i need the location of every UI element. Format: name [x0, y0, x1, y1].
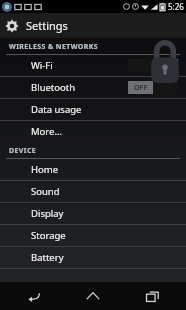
other: Screen lock — [150, 40, 180, 84]
button[interactable]: Sound — [0, 181, 186, 202]
button[interactable]: Display — [0, 203, 186, 224]
button[interactable]: Home — [0, 159, 186, 180]
staticText: Home — [31, 163, 59, 176]
staticText: Sound — [31, 185, 60, 198]
staticText: Storage — [31, 229, 66, 242]
staticText: Battery — [31, 251, 64, 264]
button[interactable]: Data usage — [0, 99, 186, 120]
button[interactable]: Bluetooth — [0, 77, 186, 98]
button[interactable]: Storage — [0, 225, 186, 246]
staticText: Settings — [26, 18, 68, 33]
button[interactable]: Recent apps — [132, 283, 172, 309]
button[interactable]: Home — [73, 283, 113, 309]
staticText: WIRELESS & NETWORKS — [9, 42, 99, 52]
button[interactable]: Bluetooth off — [128, 81, 178, 94]
staticText: Data usage — [31, 103, 82, 116]
staticText: ON — [160, 61, 172, 71]
staticText: DEVICE — [9, 146, 37, 156]
button[interactable]: Back — [14, 283, 54, 309]
staticText: Display — [31, 207, 64, 220]
button[interactable]: Settings — [0, 13, 186, 38]
staticText: Bluetooth — [31, 81, 76, 94]
button[interactable]: Battery — [0, 247, 186, 268]
button[interactable]: More… — [0, 121, 186, 142]
staticText: 5:26 — [168, 1, 184, 12]
button[interactable]: Wi-Fi on — [128, 59, 178, 72]
staticText: Wi-Fi — [31, 59, 53, 72]
button[interactable]: Wi-Fi — [0, 55, 186, 76]
staticText: More… — [31, 125, 62, 138]
staticText: OFF — [134, 83, 148, 93]
